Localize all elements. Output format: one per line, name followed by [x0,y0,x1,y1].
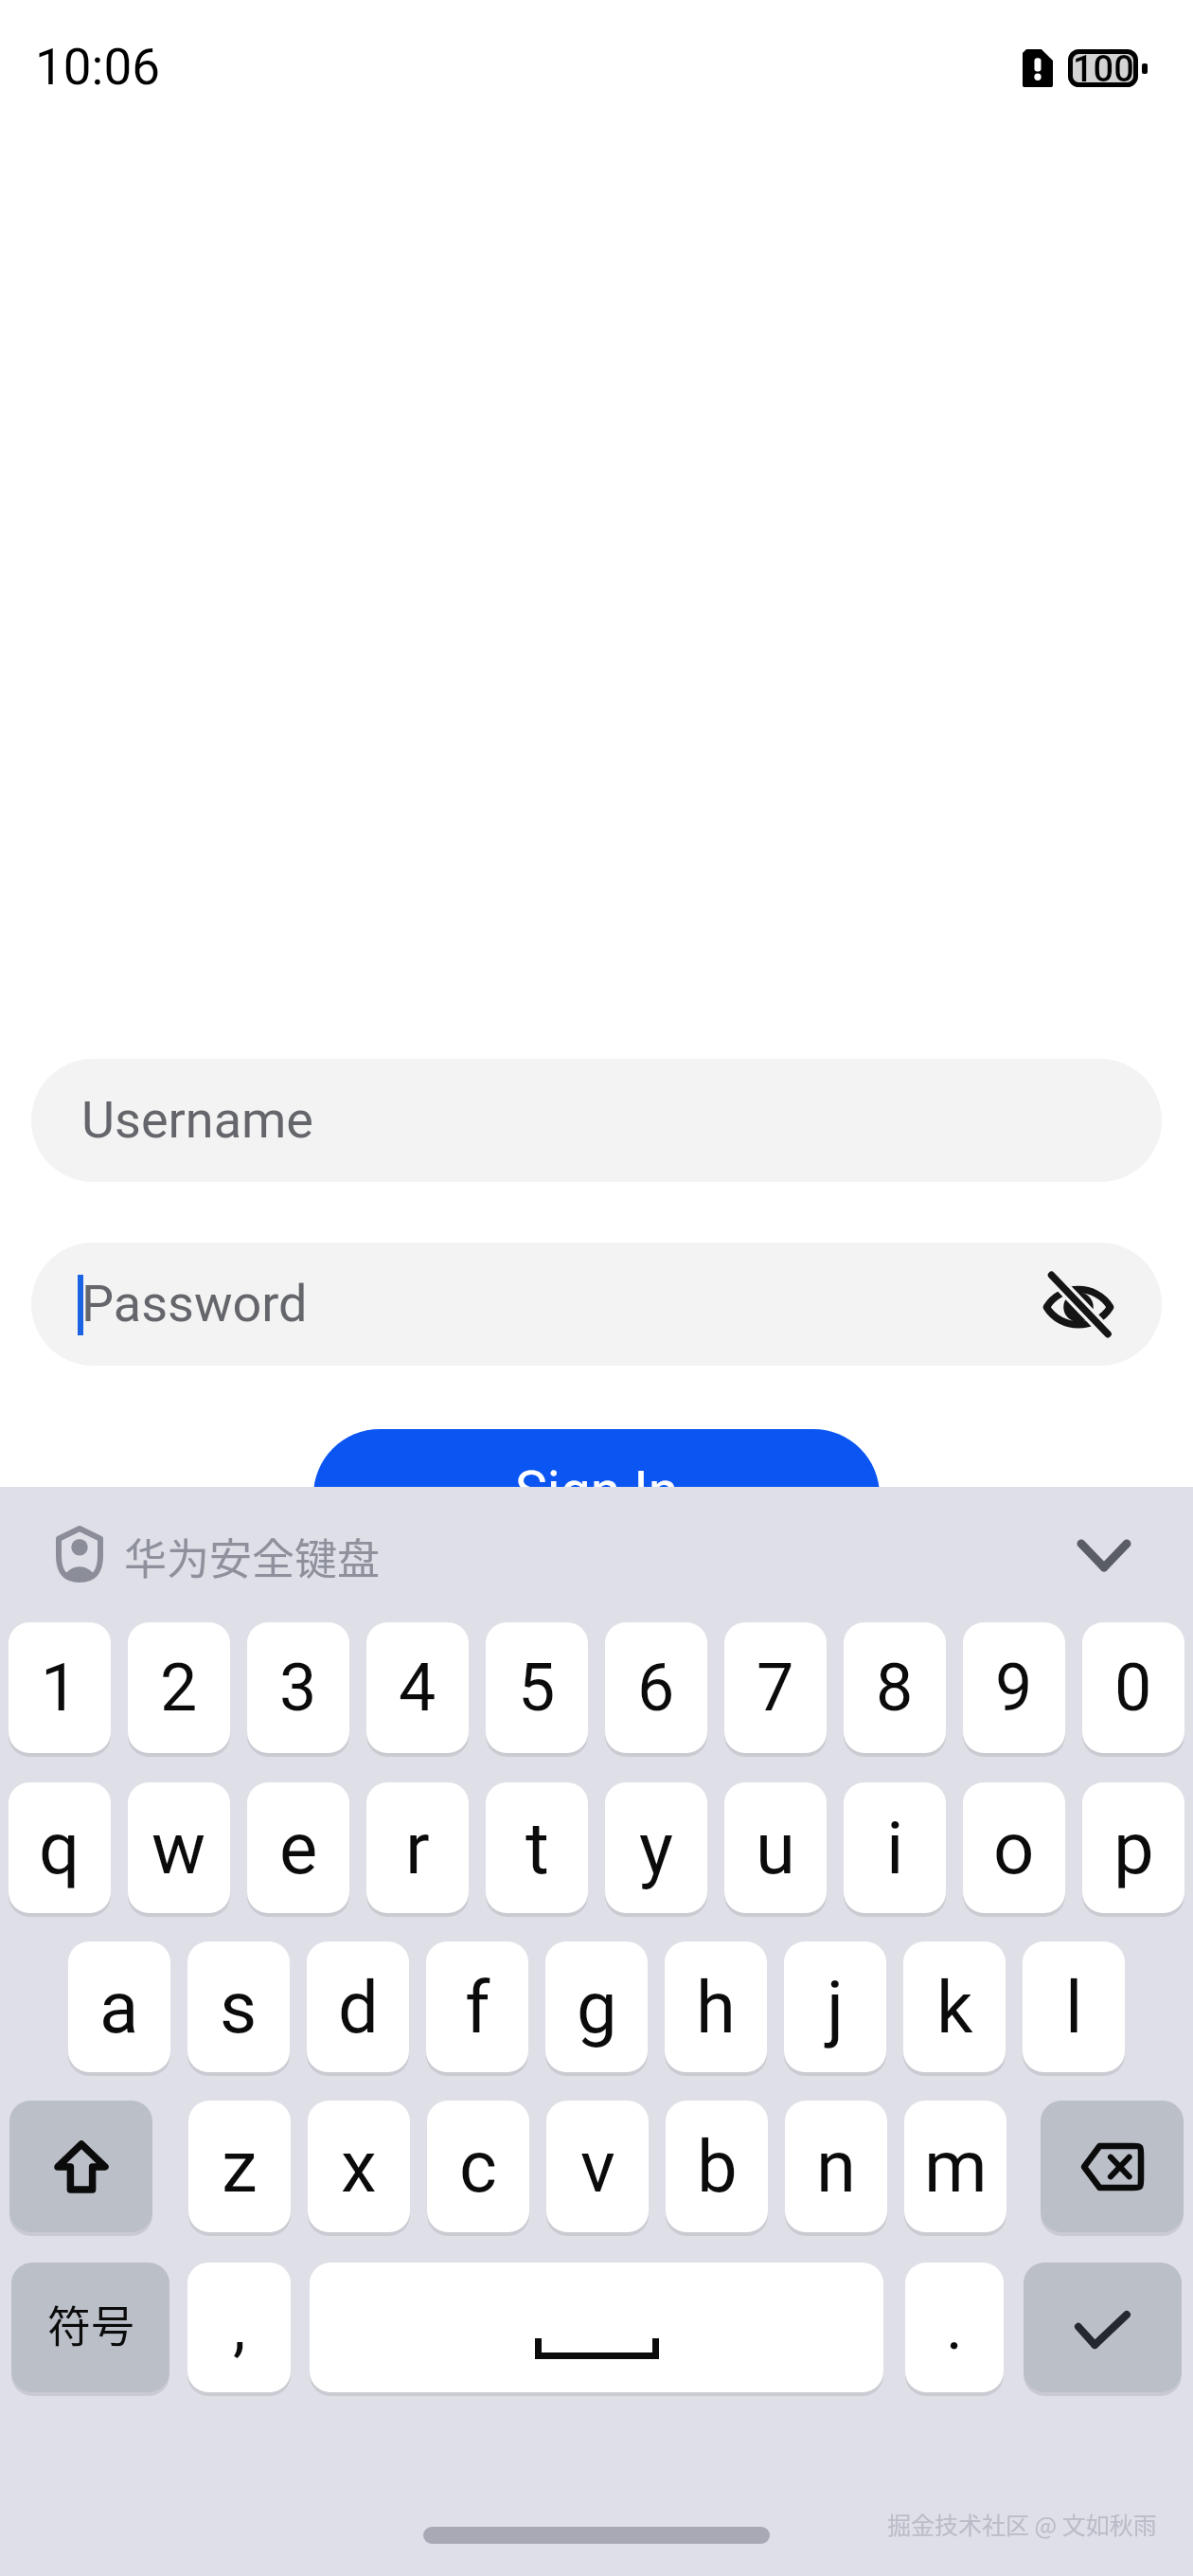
button[interactable]: , [187,2263,291,2392]
staticText: 华为安全键盘 [124,1526,381,1587]
staticText: 8 [876,1649,914,1726]
button[interactable]: 0 [1082,1622,1184,1753]
staticText: Password [81,1274,308,1333]
staticText: u [756,1806,795,1890]
button[interactable]: w [128,1782,230,1913]
staticText: 1 [41,1649,79,1726]
button[interactable]: u [724,1782,827,1913]
staticText: l [1065,1965,1083,2049]
button[interactable]: 6 [605,1622,707,1753]
staticText: n [816,2124,856,2209]
button[interactable]: r [366,1782,469,1913]
staticText: 5 [518,1649,556,1726]
button[interactable]: g [545,1941,648,2072]
staticText: j [827,1965,845,2049]
staticText: . [946,2289,963,2365]
button[interactable]: 符号 [11,2263,169,2392]
button[interactable]: . [905,2263,1004,2392]
button[interactable]: y [605,1782,707,1913]
staticText: e [279,1806,318,1890]
staticText: o [993,1806,1035,1890]
button[interactable]: 4 [366,1622,469,1753]
button[interactable]: 3 [247,1622,349,1753]
staticText: 0 [1114,1649,1152,1726]
staticText: 掘金技术社区 @ 文如秋雨 [887,2507,1157,2541]
button[interactable]: e [247,1782,349,1913]
button[interactable]: o [963,1782,1065,1913]
button[interactable]: t [486,1782,588,1913]
button[interactable]: Show password [1033,1259,1124,1350]
button[interactable]: m [904,2101,1006,2232]
button[interactable]: Hide keyboard [1047,1508,1161,1602]
staticText: b [697,2124,738,2209]
staticText: m [924,2124,988,2209]
staticText: s [220,1965,258,2049]
staticText: z [222,2124,258,2209]
staticText: c [459,2124,497,2209]
button[interactable]: a [68,1941,170,2072]
staticText: a [99,1965,139,2049]
staticText: x [341,2124,377,2209]
staticText: 10:06 [35,38,160,97]
button[interactable]: f [426,1941,528,2072]
button[interactable]: q [9,1782,111,1913]
button[interactable]: Sign In [313,1429,880,1562]
staticText: 7 [757,1649,794,1726]
button[interactable]: l [1023,1941,1125,2072]
button[interactable]: d [307,1941,409,2072]
staticText: k [936,1965,973,2049]
staticText: 100 [1073,48,1134,86]
button[interactable]: i [844,1782,946,1913]
staticText: i [886,1806,904,1890]
button[interactable]: Backspace [1041,2101,1184,2232]
staticText: , [233,2289,246,2365]
button[interactable]: Enter [1024,2263,1182,2392]
staticText: 9 [995,1649,1033,1726]
button[interactable]: 1 [9,1622,111,1753]
button[interactable]: k [903,1941,1006,2072]
staticText: Sign In [515,1459,679,1523]
staticText: 符号 [47,2292,134,2355]
staticText: h [696,1965,736,2049]
button[interactable]: n [785,2101,887,2232]
button[interactable]: c [427,2101,529,2232]
button[interactable]: 7 [724,1622,827,1753]
button[interactable]: 9 [963,1622,1065,1753]
staticText: p [1113,1806,1154,1890]
button[interactable]: s [187,1941,290,2072]
button[interactable]: j [784,1941,886,2072]
staticText: v [580,2124,615,2209]
staticText: 6 [637,1649,675,1726]
staticText: Username [81,1090,314,1150]
staticText: r [405,1806,430,1890]
button[interactable]: Username [31,1059,1162,1182]
staticText: 3 [279,1649,317,1726]
staticText: 2 [160,1649,198,1726]
button[interactable]: p [1082,1782,1184,1913]
button[interactable]: Shift [9,2101,152,2232]
button[interactable]: 5 [486,1622,588,1753]
staticText: q [39,1806,80,1890]
button[interactable]: 8 [844,1622,946,1753]
button[interactable]: v [546,2101,649,2232]
button[interactable]: 2 [128,1622,230,1753]
staticText: 4 [399,1649,436,1726]
button[interactable]: h [665,1941,767,2072]
staticText: t [525,1806,549,1890]
staticText: w [151,1806,206,1890]
staticText: d [338,1965,379,2049]
button[interactable]: Password [31,1243,1162,1366]
button[interactable]: Space [310,2263,883,2392]
staticText: g [577,1965,617,2049]
staticText: y [639,1806,673,1890]
button[interactable]: b [666,2101,768,2232]
button[interactable]: z [188,2101,291,2232]
button[interactable]: x [308,2101,410,2232]
staticText: f [465,1965,490,2049]
